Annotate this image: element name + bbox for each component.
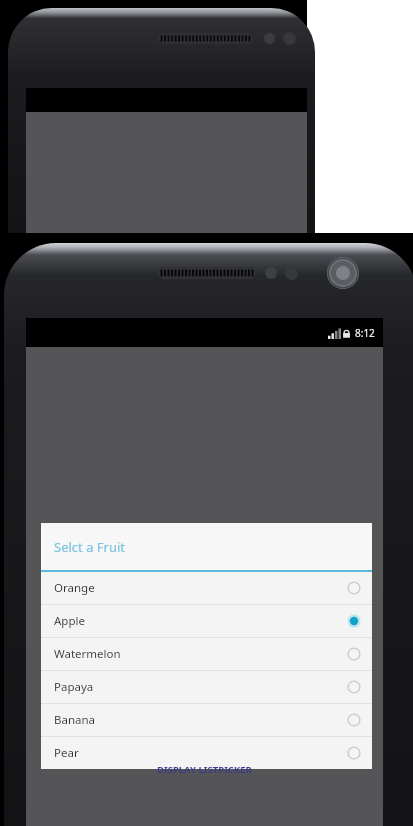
staticText: DISPLAY LISTPICKER xyxy=(157,763,252,776)
staticText: Banana xyxy=(54,712,347,728)
button[interactable]: Orange xyxy=(41,572,372,604)
staticText: Watermelon xyxy=(54,646,347,662)
button[interactable]: Banana xyxy=(41,704,372,736)
button[interactable]: Apple xyxy=(41,605,372,637)
staticText: Papaya xyxy=(54,679,347,695)
staticText: Orange xyxy=(54,580,347,596)
button[interactable]: DISPLAY LISTPICKER xyxy=(26,761,383,777)
button[interactable]: Watermelon xyxy=(41,638,372,670)
staticText: Pear xyxy=(54,745,347,761)
button[interactable]: Pear xyxy=(41,737,372,769)
staticText: Apple xyxy=(54,613,347,629)
staticText: Selct a Fruit xyxy=(54,538,126,556)
button[interactable]: Papaya xyxy=(41,671,372,703)
staticText: 8:12 xyxy=(355,326,375,340)
